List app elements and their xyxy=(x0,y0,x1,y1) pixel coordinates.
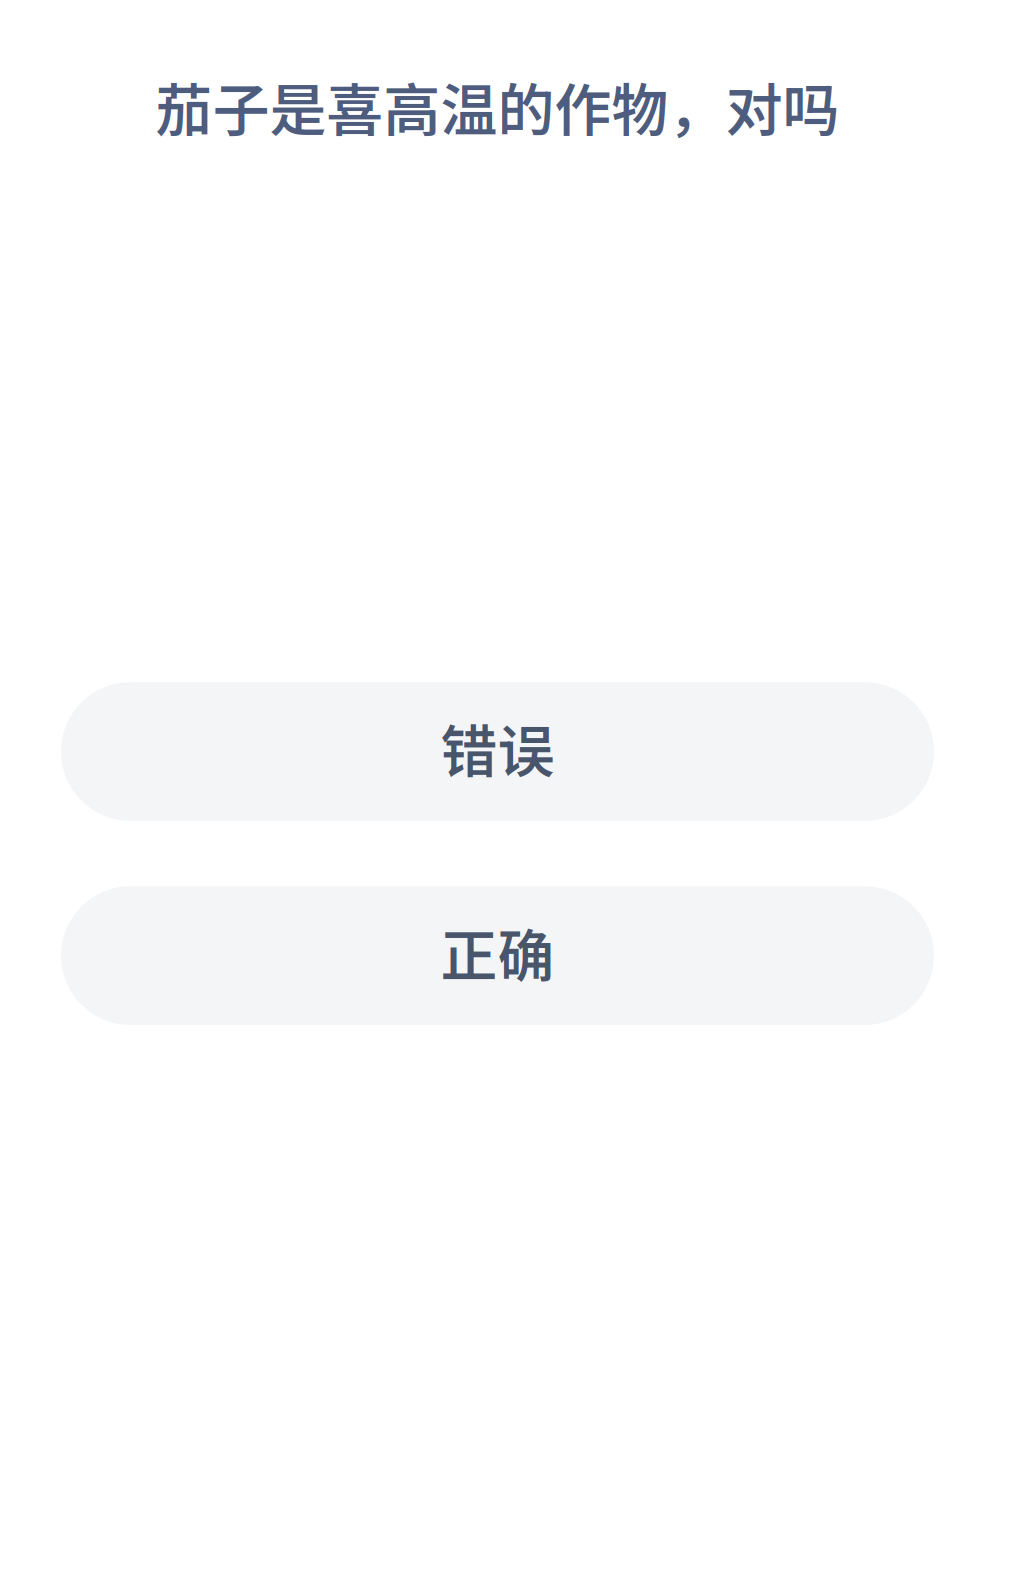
staticText: 茄子是喜高温的作物，对吗 xyxy=(155,65,839,147)
button[interactable]: 正确 xyxy=(61,886,934,1025)
staticText: 正确 xyxy=(440,910,554,993)
button[interactable]: 错误 xyxy=(61,682,934,821)
staticText: 错误 xyxy=(440,706,554,789)
